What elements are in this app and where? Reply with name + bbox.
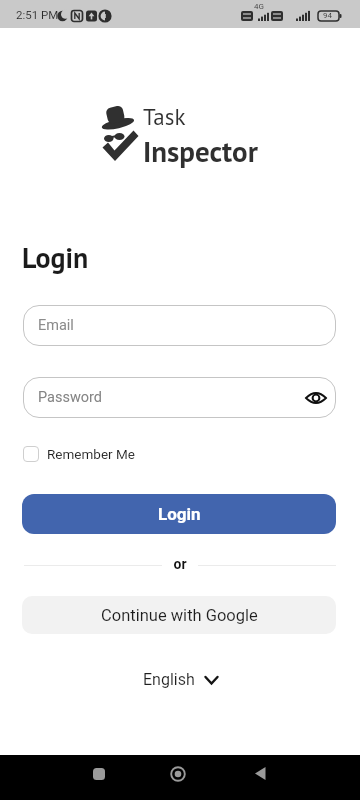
staticText: Continue with Google — [101, 606, 258, 625]
staticText: Login — [158, 504, 201, 524]
button[interactable]: Password — [23, 377, 336, 418]
button[interactable]: Continue with Google — [22, 596, 336, 634]
staticText: Remember Me — [47, 446, 135, 462]
button[interactable] — [255, 767, 266, 780]
staticText: 94 — [323, 11, 332, 20]
staticText: Login — [22, 239, 89, 275]
staticText: 2:51 PM — [16, 8, 59, 21]
button[interactable]: Login — [22, 494, 336, 534]
staticText: Task — [143, 102, 186, 132]
staticText: 4G — [254, 2, 264, 11]
button[interactable]: Remember Me — [23, 446, 135, 462]
button[interactable]: Email — [23, 305, 336, 346]
button[interactable] — [170, 766, 186, 782]
button[interactable]: English — [143, 670, 218, 689]
button[interactable] — [93, 768, 105, 780]
staticText: Email — [38, 317, 74, 334]
staticText: Inspector — [143, 132, 258, 170]
staticText: Password — [38, 389, 103, 406]
staticText: or — [0, 556, 360, 572]
staticText: English — [143, 670, 195, 689]
